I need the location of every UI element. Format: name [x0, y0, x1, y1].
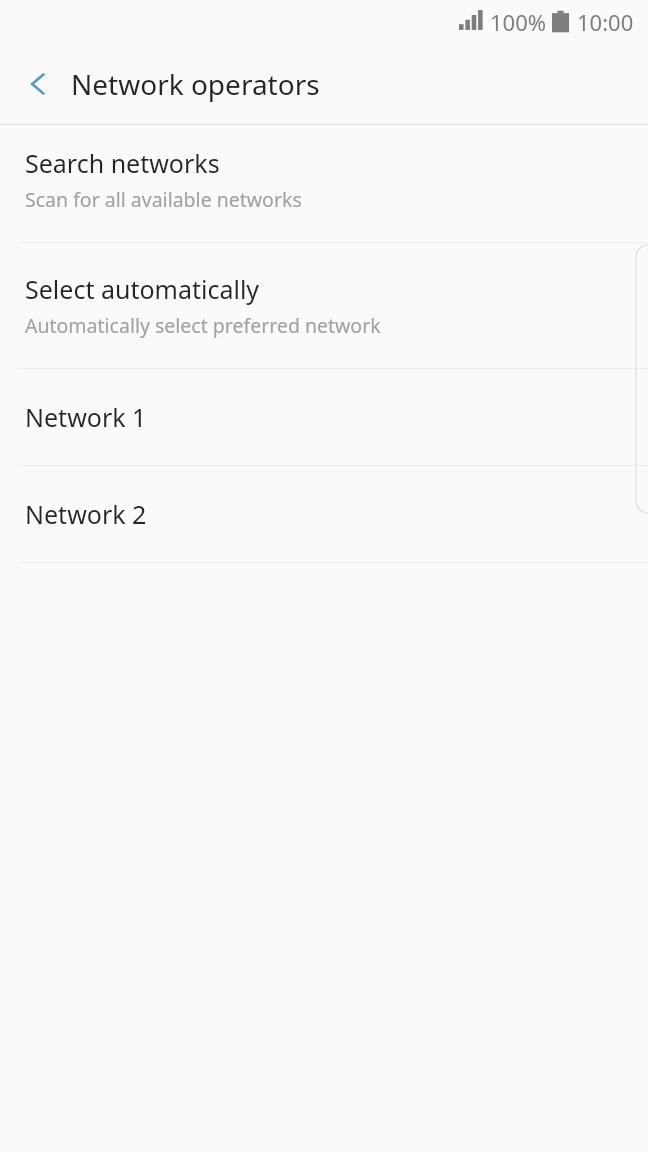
staticText: Search networks	[25, 146, 220, 180]
staticText: Network 1	[25, 400, 147, 434]
staticText: Scan for all available networks	[25, 186, 302, 213]
button[interactable]: Back	[10, 56, 66, 112]
staticText: 100%	[490, 7, 547, 37]
staticText: Automatically select preferred network	[25, 312, 381, 339]
staticText: 10:00	[577, 7, 634, 37]
button[interactable]: Select automatically	[0, 251, 648, 359]
button[interactable]: Network 1	[0, 377, 648, 456]
button[interactable]: Network 2	[0, 474, 648, 553]
staticText: Select automatically	[25, 272, 260, 306]
staticText: Network 2	[25, 497, 147, 531]
staticText: Network operators	[71, 65, 320, 103]
button[interactable]: Search networks	[0, 125, 648, 233]
